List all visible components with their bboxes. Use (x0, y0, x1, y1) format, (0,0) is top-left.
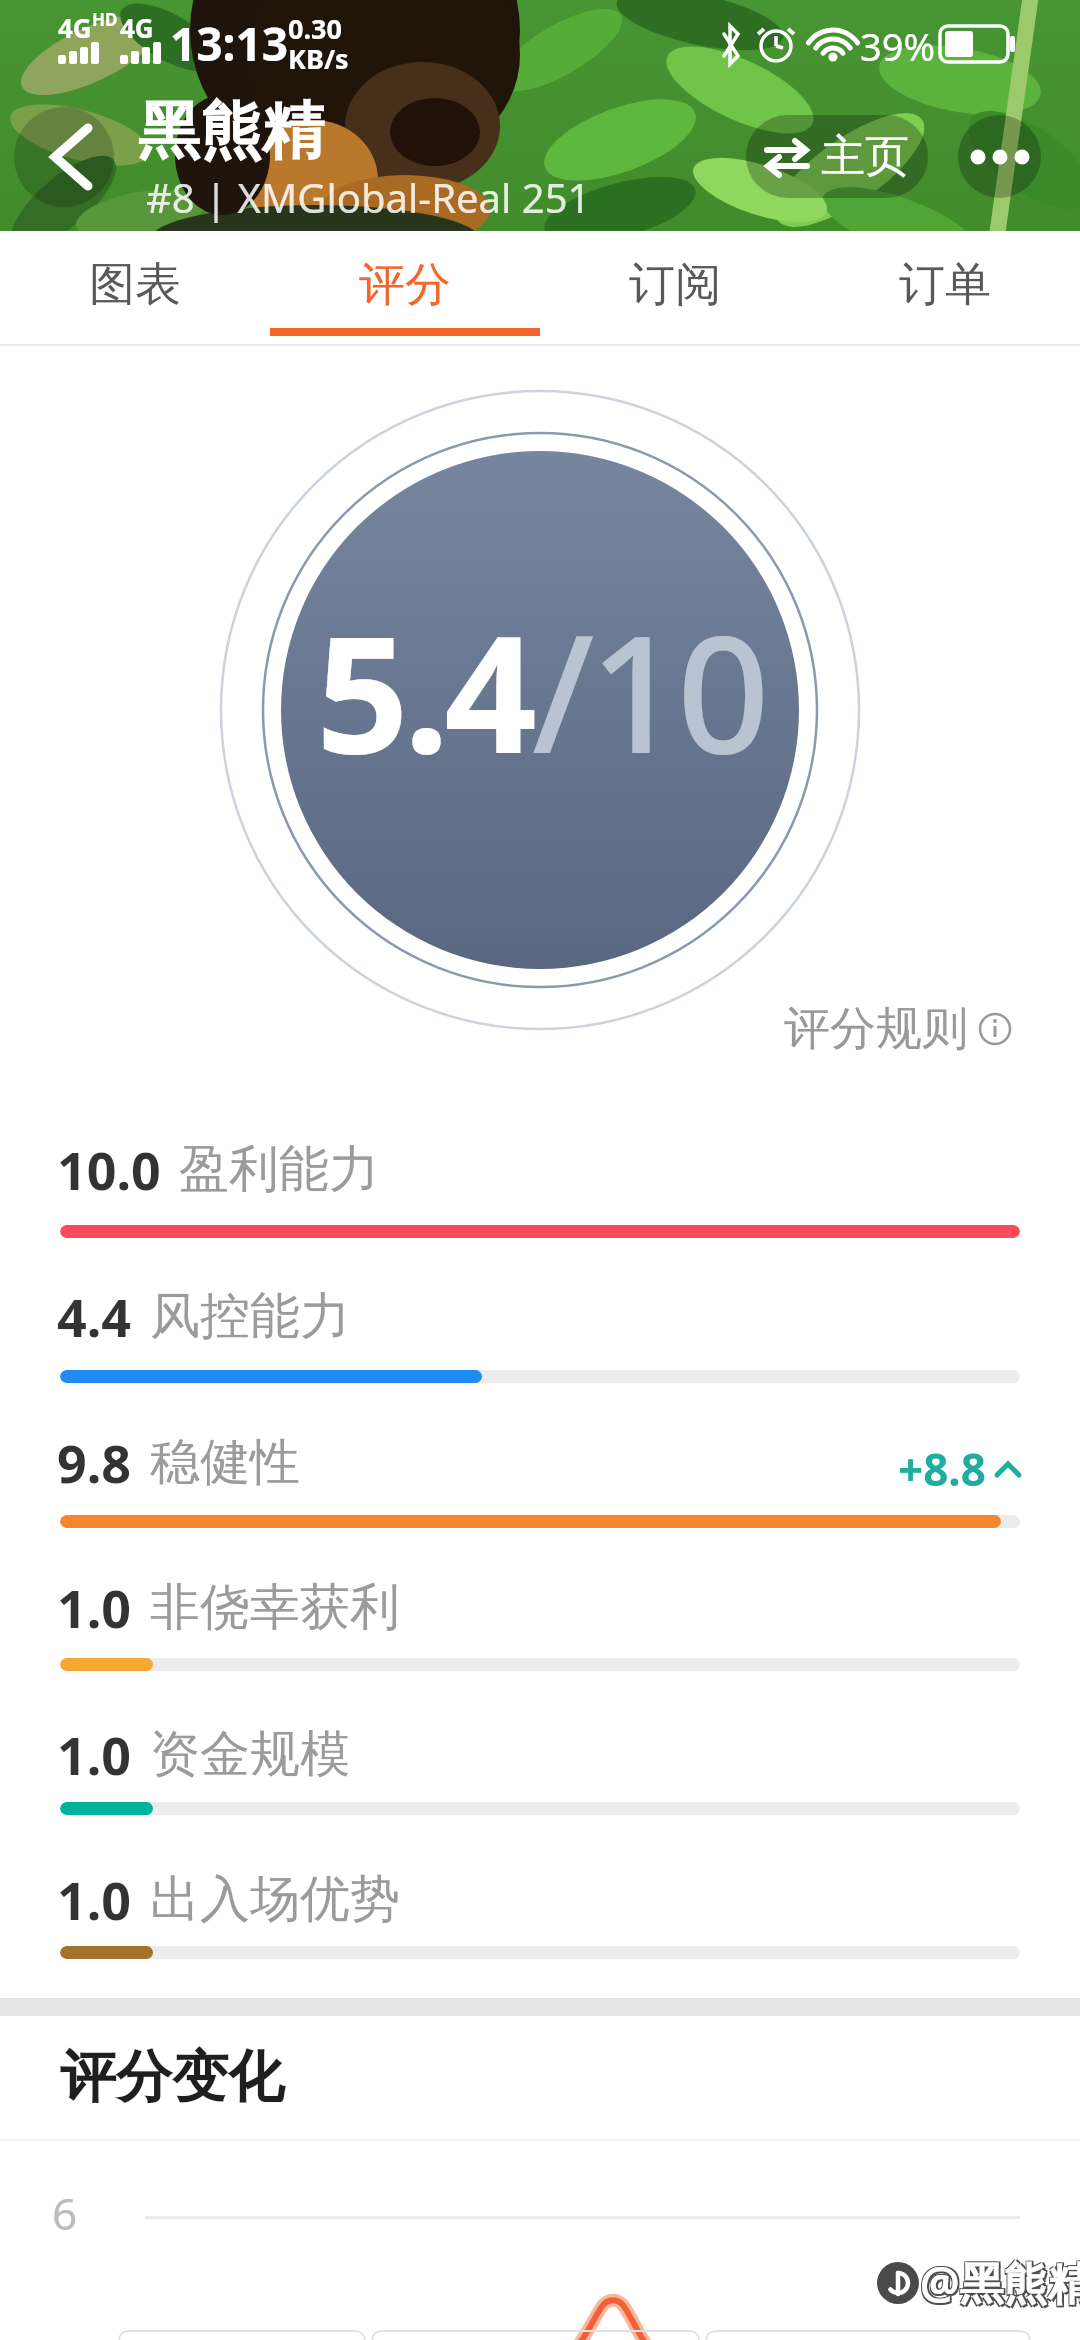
button[interactable]: 订阅 (540, 231, 810, 338)
staticText: 黑熊精 (138, 92, 324, 170)
staticText: 稳健性 (150, 1431, 300, 1494)
staticText: 非侥幸获利 (150, 1576, 400, 1639)
button[interactable]: 评分规则 (784, 1000, 1012, 1058)
staticText: 4G (120, 10, 154, 45)
button[interactable]: 评分 (270, 231, 540, 338)
staticText: @黑熊精 (919, 2254, 1080, 2314)
staticText: @黑熊精 (922, 2254, 1080, 2314)
staticText: HD (92, 8, 118, 31)
button[interactable] (118, 2330, 366, 2340)
staticText: 5.4 (316, 580, 532, 801)
staticText: 39% (860, 20, 936, 72)
staticText: 评分规则 (784, 1000, 968, 1058)
staticText: @黑熊精 (922, 2251, 1080, 2311)
button[interactable] (14, 107, 114, 207)
staticText: 订阅 (629, 256, 721, 314)
staticText: 评分变化 (60, 2042, 284, 2113)
staticText: 9.8 (57, 1427, 132, 1498)
staticText: 出入场优势 (150, 1868, 400, 1931)
staticText: @黑熊精 (919, 2251, 1080, 2311)
button[interactable]: 订单 (810, 231, 1080, 338)
staticText: 主页 (821, 129, 909, 184)
button[interactable]: 主页 (746, 115, 928, 198)
staticText: 评分 (359, 256, 451, 314)
staticText: 资金规模 (150, 1723, 350, 1786)
button[interactable] (371, 2330, 700, 2340)
staticText: 4.4 (57, 1281, 132, 1352)
staticText: +8.8 (898, 1439, 986, 1499)
staticText: 10.0 (57, 1134, 161, 1205)
button[interactable]: +8.8 (898, 1439, 1022, 1499)
staticText: 订单 (899, 256, 991, 314)
staticText: 1.0 (57, 1864, 132, 1935)
staticText: 0.30 (288, 10, 342, 47)
staticText: /10 (532, 580, 765, 801)
staticText: 盈利能力 (179, 1138, 379, 1201)
staticText: #8 | XMGlobal-Real 251 (146, 170, 591, 224)
staticText: @黑熊精 (920, 2252, 1080, 2312)
staticText: 图表 (89, 256, 181, 314)
button[interactable] (958, 115, 1041, 198)
staticText: 风控能力 (150, 1285, 350, 1348)
button[interactable]: 图表 (0, 231, 270, 338)
staticText: 4G (58, 10, 92, 45)
staticText: 1.0 (57, 1572, 132, 1643)
staticText: 6 (52, 2183, 78, 2243)
staticText: 1.0 (57, 1719, 132, 1790)
staticText: 13:13 (170, 12, 289, 75)
staticText: KB/s (288, 40, 349, 77)
button[interactable] (705, 2330, 1031, 2340)
